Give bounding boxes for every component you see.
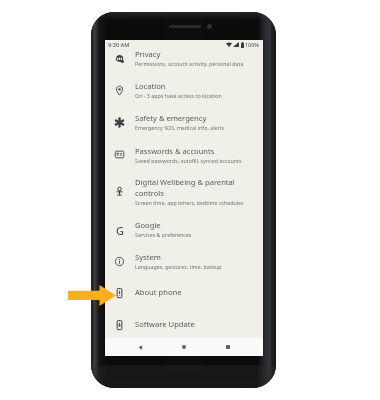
staticText: System <box>135 252 161 262</box>
staticText: Passwords & accounts <box>135 146 215 156</box>
staticText: Permissions, account activity, personal … <box>135 60 244 67</box>
staticText: 100% <box>245 41 259 48</box>
staticText: About phone <box>135 287 182 297</box>
button[interactable]: Software Update <box>105 308 263 340</box>
button[interactable]: System <box>105 246 263 276</box>
button[interactable]: Privacy <box>105 42 263 74</box>
staticText: Location <box>135 81 166 91</box>
button[interactable]: Back <box>131 338 149 356</box>
staticText: 9:30 AM <box>108 41 130 49</box>
button[interactable]: Location <box>105 74 263 106</box>
button[interactable]: Home <box>175 338 193 356</box>
staticText: Screen time, app timers, bedtime schedul… <box>135 199 244 206</box>
staticText: Languages, gestures, time, backup <box>135 263 222 270</box>
button[interactable]: Digital Wellbeing & parental controls <box>105 171 263 212</box>
staticText: Saved passwords, autofill, synced accoun… <box>135 157 242 164</box>
staticText: G <box>116 223 124 236</box>
staticText: On - 3 apps have access to location <box>135 92 222 99</box>
staticText: Google <box>135 220 161 230</box>
button[interactable]: About phone <box>105 276 263 308</box>
button[interactable]: Passwords & accounts <box>105 138 263 171</box>
staticText: Privacy <box>135 49 161 59</box>
button[interactable]: Safety & emergency <box>105 106 263 138</box>
staticText: Emergency SOS, medical info, alerts <box>135 124 225 131</box>
staticText: Safety & emergency <box>135 113 207 123</box>
button[interactable]: Recent apps <box>219 338 237 356</box>
button[interactable]: G <box>105 212 263 246</box>
staticText: Digital Wellbeing & parental controls <box>135 177 257 198</box>
staticText: Software Update <box>135 319 195 329</box>
other: Pointer to About phone <box>68 285 116 306</box>
staticText: Services & preferences <box>135 231 192 238</box>
